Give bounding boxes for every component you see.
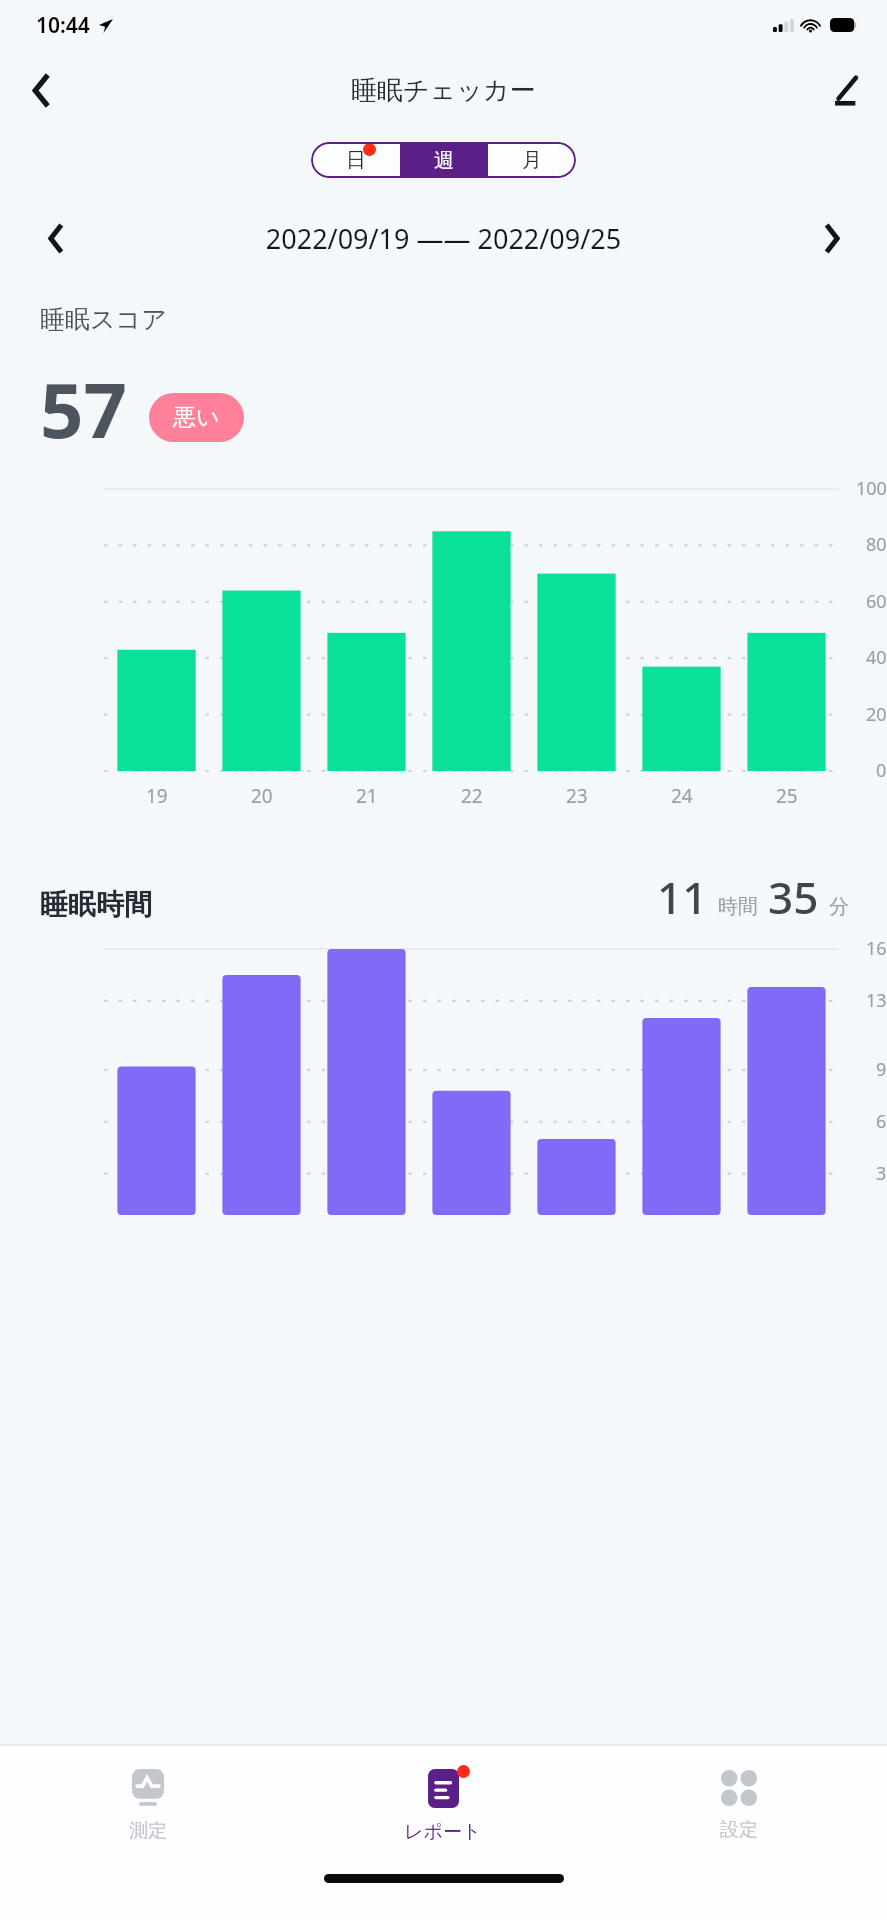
button[interactable]: 設定 bbox=[591, 1746, 887, 1866]
staticText: 2022/09/19 —— 2022/09/25 bbox=[82, 220, 805, 257]
button[interactable]: Edit bbox=[815, 60, 875, 120]
button[interactable]: 月 bbox=[488, 142, 576, 178]
staticText: 60 bbox=[866, 589, 887, 614]
staticText: 21 bbox=[356, 783, 378, 809]
staticText: 日 bbox=[346, 148, 366, 173]
staticText: 40 bbox=[866, 645, 887, 670]
staticText: 25 bbox=[776, 783, 798, 809]
staticText: 9 bbox=[876, 1057, 887, 1082]
staticText: 22 bbox=[461, 783, 483, 809]
staticText: 分 bbox=[829, 894, 849, 919]
staticText: 24 bbox=[671, 783, 693, 809]
staticText: 月 bbox=[522, 148, 542, 173]
button[interactable]: 日 bbox=[311, 142, 400, 178]
staticText: 週 bbox=[434, 148, 454, 173]
staticText: 3 bbox=[876, 1161, 887, 1186]
staticText: 16 bbox=[866, 936, 887, 961]
staticText: 35 bbox=[768, 867, 819, 927]
staticText: 20 bbox=[866, 702, 887, 727]
staticText: 測定 bbox=[129, 1819, 167, 1843]
button[interactable]: レポート bbox=[295, 1746, 591, 1866]
staticText: 100 bbox=[856, 476, 887, 501]
staticText: 80 bbox=[866, 532, 887, 557]
staticText: 睡眠時間 bbox=[40, 887, 152, 922]
staticText: 睡眠スコア bbox=[40, 304, 167, 335]
staticText: 時間 bbox=[718, 894, 758, 919]
staticText: 6 bbox=[876, 1109, 887, 1134]
staticText: 睡眠チェッカー bbox=[351, 74, 536, 107]
button[interactable]: Back bbox=[12, 60, 72, 120]
button[interactable]: Previous week bbox=[30, 214, 82, 262]
button[interactable]: 測定 bbox=[0, 1746, 295, 1866]
staticText: 設定 bbox=[720, 1818, 758, 1842]
staticText: レポート bbox=[404, 1820, 482, 1844]
staticText: 57 bbox=[40, 357, 127, 461]
staticText: 10:44 bbox=[36, 11, 90, 40]
staticText: 0 bbox=[876, 758, 887, 783]
staticText: 19 bbox=[146, 783, 168, 809]
staticText: 悪い bbox=[173, 403, 220, 432]
staticText: 11 bbox=[657, 867, 708, 927]
staticText: 20 bbox=[251, 783, 273, 809]
staticText: 13 bbox=[866, 988, 887, 1013]
button[interactable]: 週 bbox=[400, 142, 488, 178]
staticText: 23 bbox=[566, 783, 588, 809]
button[interactable]: Next week bbox=[805, 214, 857, 262]
